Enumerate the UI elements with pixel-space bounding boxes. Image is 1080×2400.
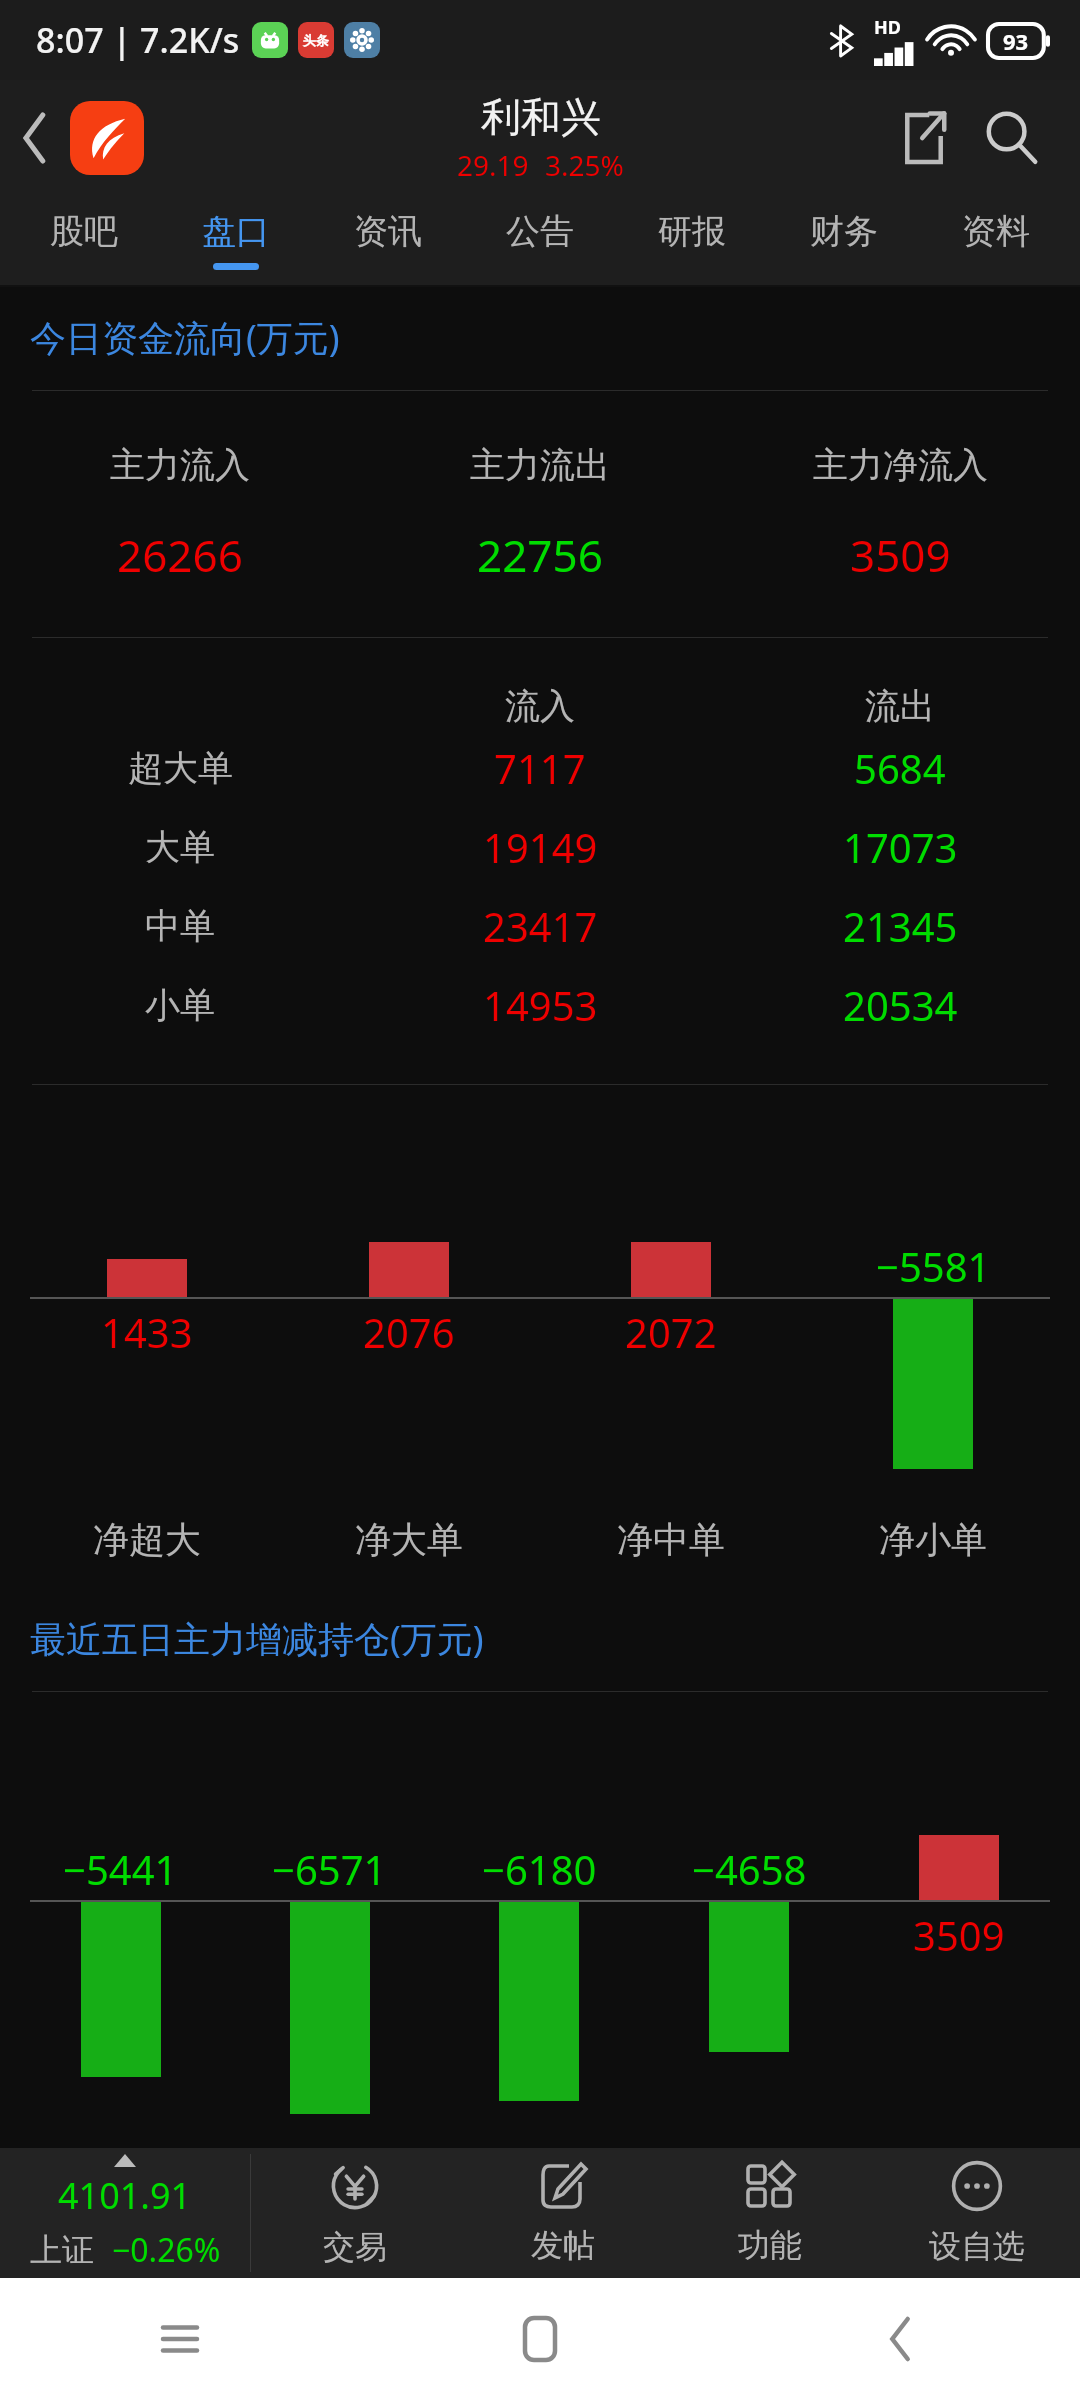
staticText: 大单 [145, 825, 215, 869]
staticText: 设自选 [929, 2226, 1025, 2266]
button[interactable]: Search [966, 92, 1058, 184]
staticText: 净小单 [879, 1517, 987, 1562]
staticText: 净中单 [617, 1517, 725, 1562]
staticText: −5441 [63, 1842, 178, 1896]
staticText: 93 [1003, 26, 1029, 56]
staticText: 3509 [913, 1908, 1005, 1962]
staticText: 头条 [303, 32, 329, 48]
staticText: 研报 [658, 210, 726, 253]
button[interactable]: 超大单 [0, 728, 1080, 807]
button[interactable]: 利和兴 [457, 92, 624, 184]
button[interactable]: Recent apps [0, 2278, 360, 2400]
button[interactable]: Back [720, 2278, 1080, 2400]
button[interactable]: 资讯 [312, 195, 464, 285]
staticText: 财务 [810, 210, 878, 253]
button[interactable]: Home [360, 2278, 720, 2400]
staticText: 公告 [506, 210, 574, 253]
staticText: 流出 [865, 684, 935, 728]
staticText: 流入 [505, 684, 575, 728]
staticText: 发帖 [531, 2225, 595, 2265]
button[interactable]: 财务 [768, 195, 920, 285]
staticText: HD [874, 15, 901, 40]
staticText: 3.25% [545, 146, 624, 184]
staticText: 2072 [625, 1305, 717, 1359]
button[interactable]: 大单 [0, 807, 1080, 886]
staticText: 1433 [101, 1305, 193, 1359]
staticText: 22756 [477, 525, 603, 585]
button[interactable]: 公告 [464, 195, 616, 285]
staticText: 8:07 | 7.2K/s [36, 17, 240, 63]
staticText: −4658 [692, 1842, 807, 1896]
staticText: 主力流入 [110, 443, 250, 487]
staticText: 功能 [738, 2225, 802, 2265]
staticText: −0.26% [112, 2228, 221, 2272]
button[interactable]: 资料 [920, 195, 1072, 285]
staticText: 主力净流入 [813, 443, 988, 487]
button[interactable]: 交易 [251, 2148, 459, 2278]
staticText: 5684 [854, 741, 946, 795]
staticText: 资料 [962, 210, 1030, 253]
staticText: 7117 [494, 741, 586, 795]
button[interactable]: 功能 [666, 2148, 873, 2278]
staticText: 上证 [30, 2230, 94, 2270]
staticText: 今日资金流向(万元) [30, 313, 340, 362]
staticText: 21345 [843, 899, 958, 953]
button[interactable]: 研报 [616, 195, 768, 285]
staticText: 净超大 [93, 1517, 201, 1562]
staticText: 中单 [145, 904, 215, 948]
staticText: 19149 [483, 820, 598, 874]
staticText: 20534 [843, 978, 958, 1032]
staticText: 股吧 [50, 210, 118, 253]
staticText: 最近五日主力增减持仓(万元) [30, 1614, 484, 1663]
staticText: 交易 [323, 2227, 387, 2267]
staticText: 29.19 [457, 146, 529, 184]
staticText: −5581 [876, 1239, 991, 1293]
staticText: 资讯 [354, 210, 422, 253]
staticText: 23417 [483, 899, 598, 953]
staticText: 小单 [145, 983, 215, 1027]
staticText: −6571 [272, 1842, 387, 1896]
button[interactable]: 中单 [0, 886, 1080, 965]
staticText: 主力流出 [470, 443, 610, 487]
staticText: 净大单 [355, 1517, 463, 1562]
button[interactable]: 股吧 [8, 195, 160, 285]
staticText: 2076 [363, 1305, 455, 1359]
staticText: 利和兴 [481, 92, 601, 142]
staticText: 4101.91 [58, 2171, 192, 2220]
staticText: 3509 [850, 525, 951, 585]
staticText: 17073 [843, 820, 958, 874]
button[interactable]: 发帖 [459, 2148, 666, 2278]
staticText: 盘口 [202, 210, 270, 253]
staticText: 超大单 [128, 746, 233, 790]
button[interactable]: Back [0, 80, 70, 195]
button[interactable]: 小单 [0, 965, 1080, 1044]
staticText: 26266 [117, 525, 243, 585]
button[interactable]: App home [70, 101, 144, 175]
staticText: 14953 [483, 978, 598, 1032]
button[interactable]: 盘口 [160, 195, 312, 285]
button[interactable]: 4101.91 [0, 2148, 250, 2278]
button[interactable]: Share [882, 96, 966, 180]
button[interactable]: 设自选 [873, 2148, 1080, 2278]
staticText: −6180 [482, 1842, 597, 1896]
